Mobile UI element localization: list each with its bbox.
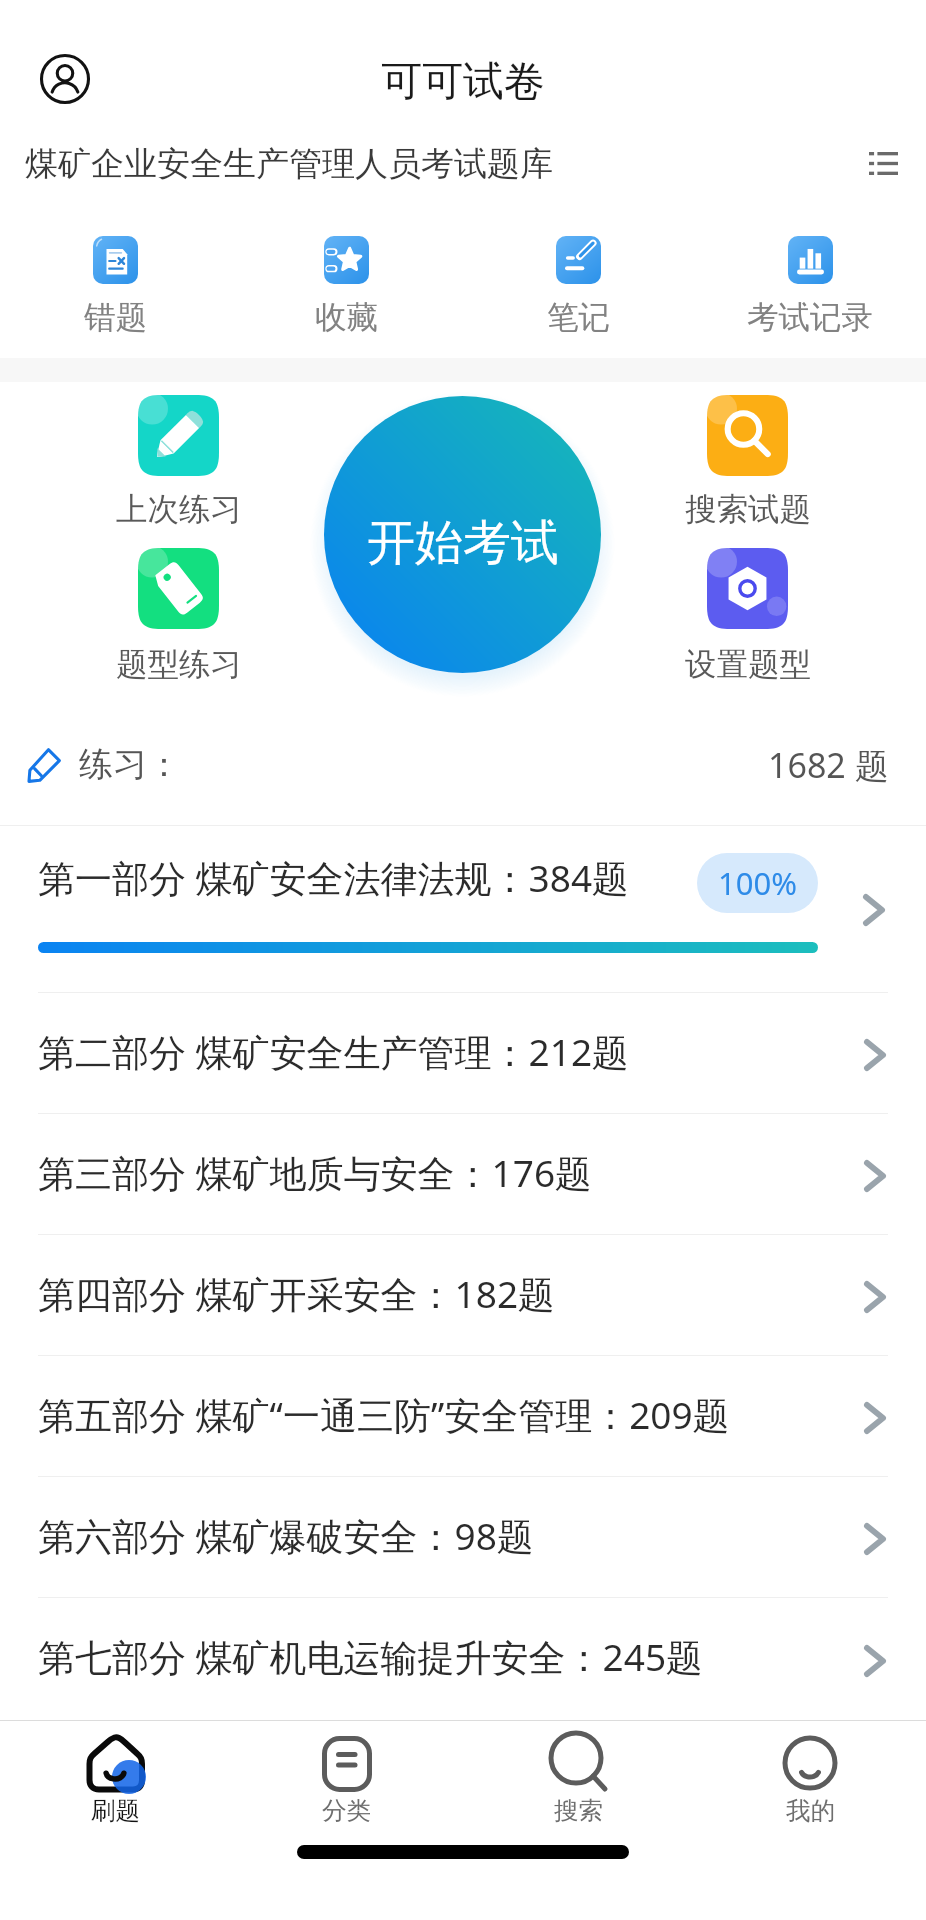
button[interactable]: 第二部分 煤矿安全生产管理：212题 [0, 993, 926, 1114]
button[interactable]: 搜索 [462, 1721, 694, 1839]
button[interactable]: 题型练习 [109, 645, 249, 681]
staticText: 上次练习 [116, 490, 242, 526]
staticText: 搜索 [554, 1795, 603, 1826]
staticText: 考试记录 [747, 298, 873, 338]
button[interactable]: 收藏 [231, 203, 462, 358]
staticText: 笔记 [547, 298, 610, 338]
button[interactable]: 笔记 [462, 203, 694, 358]
button[interactable]: 搜索试题 [678, 490, 818, 526]
staticText: 煤矿企业安全生产管理人员考试题库 [25, 143, 553, 185]
button[interactable]: 考试记录 [694, 203, 926, 358]
staticText: 题型练习 [116, 645, 242, 681]
staticText: 第七部分 煤矿机电运输提升安全：245题 [38, 1631, 704, 1682]
button[interactable]: 第五部分 煤矿“一通三防”安全管理：209题 [0, 1356, 926, 1477]
staticText: 开始考试 [367, 513, 559, 573]
button[interactable]: 错题 [0, 203, 231, 358]
button[interactable]: 我的 [694, 1721, 926, 1839]
button[interactable]: 上次练习 [109, 490, 249, 526]
staticText: 可可试卷 [381, 56, 545, 108]
button[interactable]: Profile [40, 54, 90, 104]
staticText: 搜索试题 [685, 490, 811, 526]
staticText: 1682 题 [768, 742, 889, 788]
button[interactable]: 开始考试 [324, 396, 601, 673]
staticText: 刷题 [91, 1795, 140, 1826]
button[interactable]: 第三部分 煤矿地质与安全：176题 [0, 1114, 926, 1235]
staticText: 第六部分 煤矿爆破安全：98题 [38, 1510, 534, 1561]
button[interactable]: 第七部分 煤矿机电运输提升安全：245题 [0, 1598, 926, 1719]
staticText: 第二部分 煤矿安全生产管理：212题 [38, 1026, 630, 1077]
staticText: 练习： [79, 743, 181, 786]
staticText: 分类 [322, 1795, 371, 1826]
staticText: 第五部分 煤矿“一通三防”安全管理：209题 [38, 1389, 730, 1440]
button[interactable]: 100% [697, 853, 818, 913]
staticText: 我的 [786, 1795, 835, 1826]
staticText: 100% [718, 862, 797, 904]
staticText: 第一部分 煤矿安全法律法规：384题 [38, 852, 630, 903]
staticText: 第四部分 煤矿开采安全：182题 [38, 1268, 556, 1319]
button[interactable]: 刷题 [0, 1721, 231, 1839]
staticText: 收藏 [315, 298, 378, 338]
button[interactable]: 分类 [231, 1721, 462, 1839]
button[interactable]: 第四部分 煤矿开采安全：182题 [0, 1235, 926, 1356]
button[interactable]: List view [869, 152, 898, 175]
button[interactable]: 设置题型 [678, 645, 818, 681]
button[interactable]: 第一部分 煤矿安全法律法规：384题 [0, 826, 926, 993]
staticText: 设置题型 [685, 645, 811, 681]
staticText: 第三部分 煤矿地质与安全：176题 [38, 1147, 593, 1198]
button[interactable]: 第六部分 煤矿爆破安全：98题 [0, 1477, 926, 1598]
staticText: 错题 [84, 298, 147, 338]
